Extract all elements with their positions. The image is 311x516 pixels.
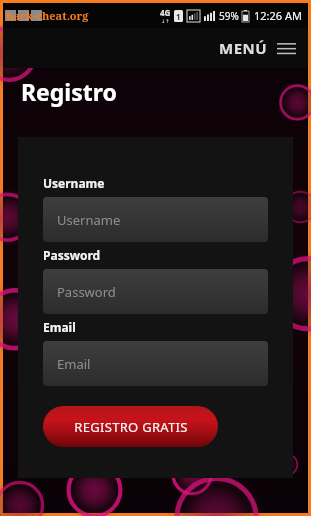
button[interactable]: Email: [43, 341, 268, 386]
staticText: 1: [176, 11, 181, 22]
staticText: MENÚ: [219, 38, 268, 58]
staticText: ↓↑: [161, 18, 170, 24]
staticText: Email: [43, 319, 76, 335]
staticText: 4G: [160, 7, 171, 18]
staticText: hack-cheat.org: [6, 8, 89, 23]
staticText: 12:26 AM: [254, 8, 302, 23]
button[interactable]: Menú: [207, 32, 308, 64]
staticText: Password: [43, 247, 101, 263]
staticText: Username: [57, 211, 121, 229]
button[interactable]: Username: [43, 197, 268, 242]
staticText: REGISTRO GRATIS: [74, 418, 188, 436]
staticText: Username: [43, 175, 105, 191]
staticText: Registro: [21, 76, 117, 107]
staticText: Email: [57, 355, 91, 373]
button[interactable]: REGISTRO GRATIS: [43, 406, 218, 447]
button[interactable]: Password: [43, 269, 268, 314]
staticText: Password: [57, 283, 116, 301]
staticText: 59%: [219, 9, 239, 23]
